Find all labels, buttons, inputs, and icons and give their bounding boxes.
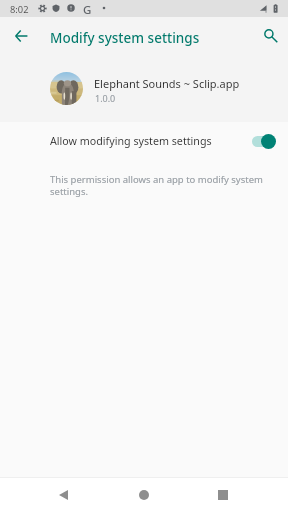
staticText: Modify system settings xyxy=(50,29,200,47)
staticText: 1.0.0 xyxy=(95,92,116,104)
button[interactable]: Search xyxy=(256,21,286,51)
button[interactable]: Navigate up xyxy=(6,21,36,51)
staticText: G xyxy=(83,2,92,18)
staticText: Elephant Sounds ~ Sclip.app xyxy=(94,76,240,91)
button[interactable]: Recent apps xyxy=(208,480,238,510)
staticText: 8:02 xyxy=(10,3,29,16)
button[interactable]: Home xyxy=(129,480,159,510)
staticText: Allow modifying system settings xyxy=(50,134,252,149)
staticText: This permission allows an app to modify … xyxy=(50,173,268,198)
button[interactable]: Allow modifying system settings xyxy=(0,119,288,163)
button[interactable]: Back xyxy=(48,480,78,510)
